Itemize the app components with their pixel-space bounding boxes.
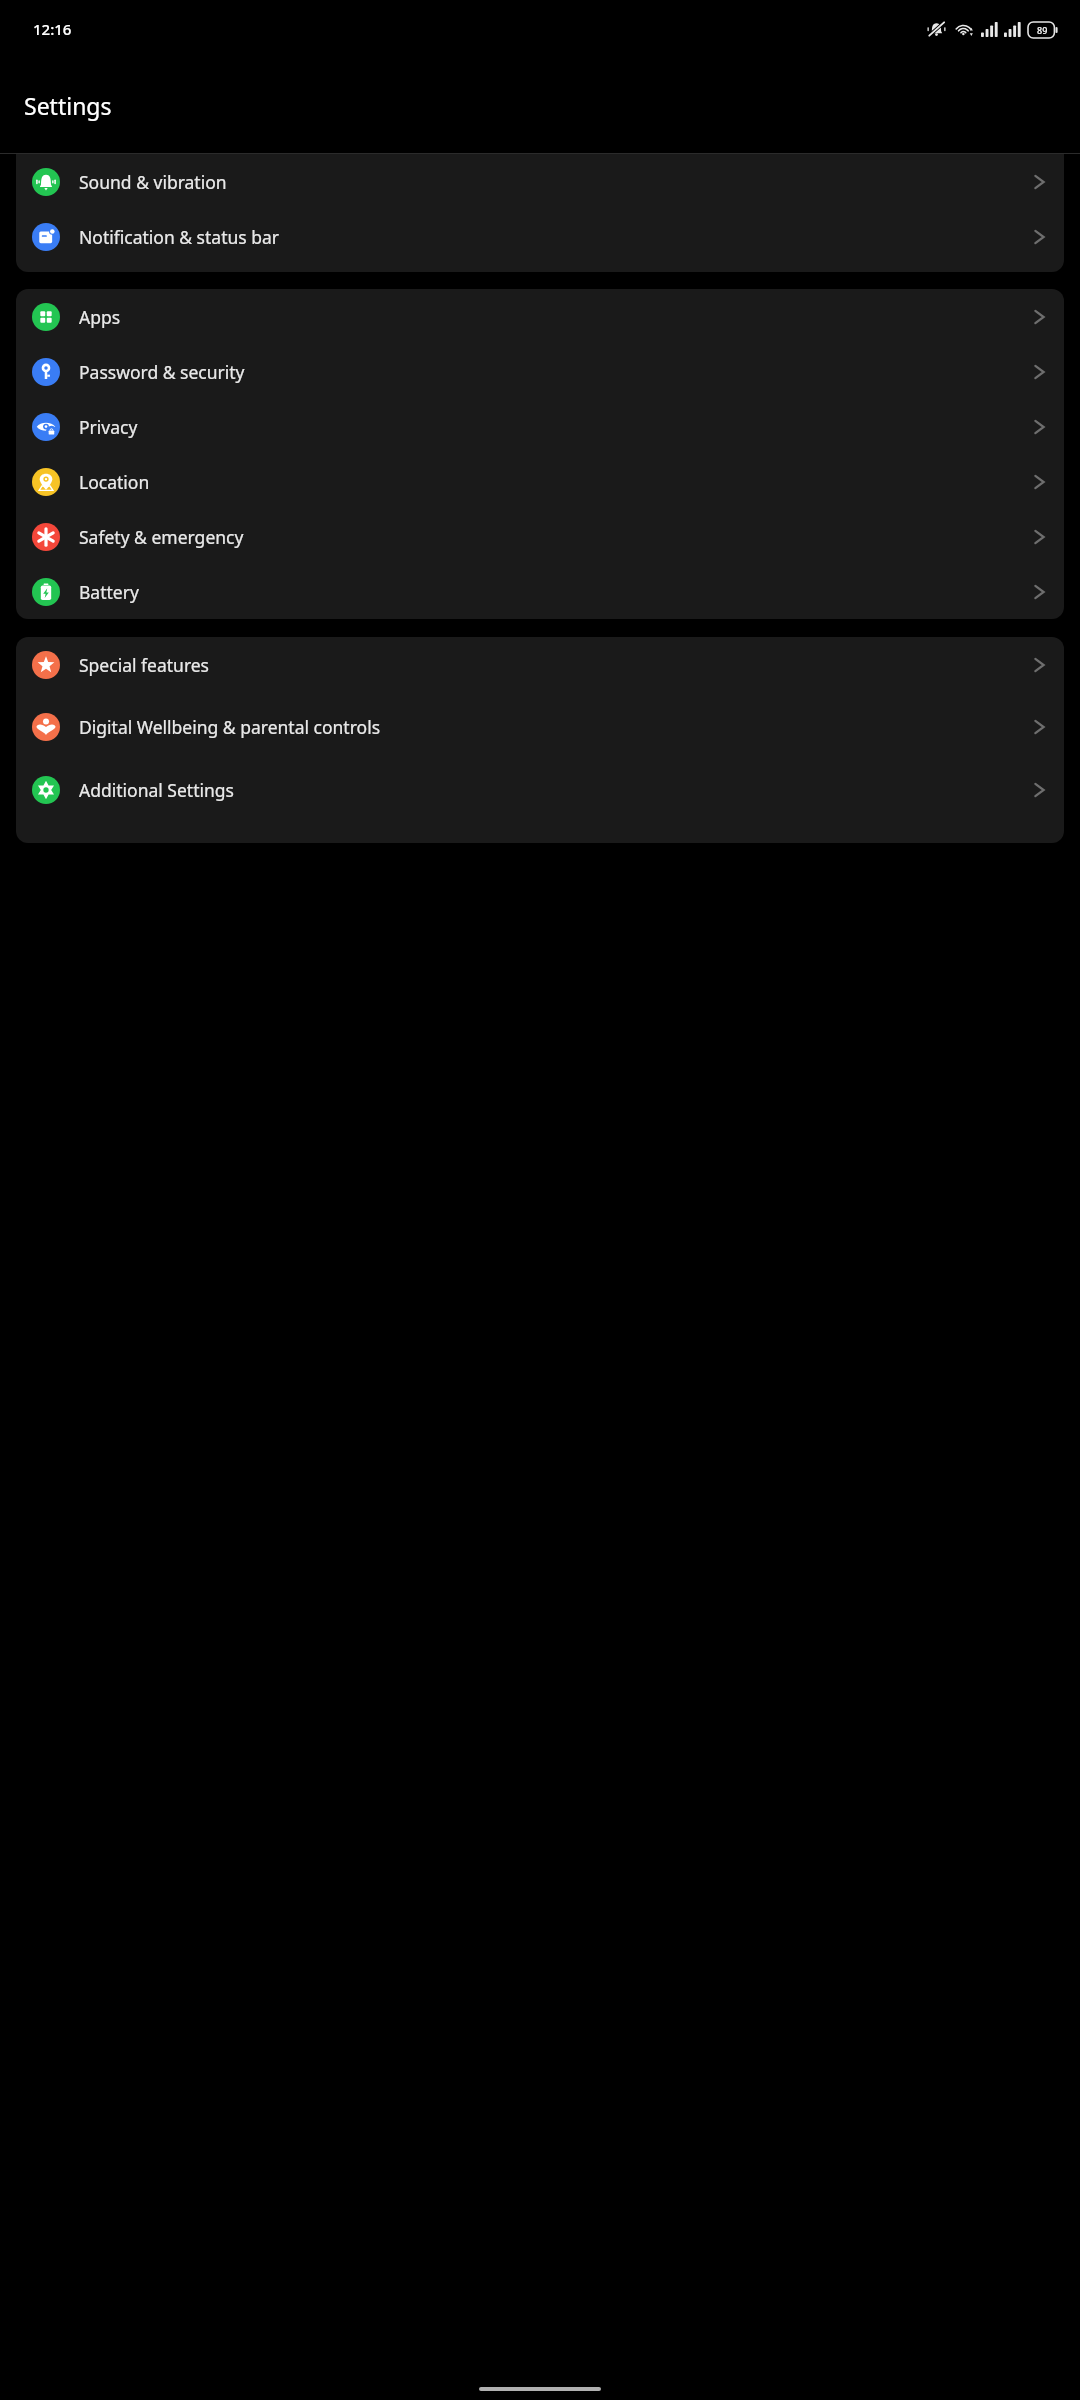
- staticText: Apps: [79, 305, 1033, 329]
- button[interactable]: Privacy: [16, 399, 1064, 454]
- button[interactable]: Digital Wellbeing & parental controls: [16, 692, 1064, 762]
- staticText: Privacy: [79, 415, 1033, 439]
- staticText: 89: [1037, 24, 1048, 36]
- staticText: Special features: [79, 653, 1033, 677]
- staticText: Password & security: [79, 360, 1033, 384]
- button[interactable]: Apps: [16, 289, 1064, 344]
- button[interactable]: Safety & emergency: [16, 509, 1064, 564]
- staticText: Settings: [24, 90, 112, 121]
- staticText: Notification & status bar: [79, 225, 1033, 249]
- button[interactable]: Battery: [16, 564, 1064, 619]
- staticText: Safety & emergency: [79, 525, 1033, 549]
- staticText: Location: [79, 470, 1033, 494]
- button[interactable]: Location: [16, 454, 1064, 509]
- staticText: Battery: [79, 580, 1033, 604]
- staticText: 12:16: [33, 19, 72, 39]
- staticText: Digital Wellbeing & parental controls: [79, 715, 1033, 739]
- staticText: Additional Settings: [79, 778, 1033, 802]
- staticText: Sound & vibration: [79, 170, 1033, 194]
- button[interactable]: Additional Settings: [16, 762, 1064, 817]
- button[interactable]: Sound & vibration: [16, 154, 1064, 209]
- button[interactable]: Password & security: [16, 344, 1064, 399]
- button[interactable]: Notification & status bar: [16, 209, 1064, 264]
- button[interactable]: Special features: [16, 637, 1064, 692]
